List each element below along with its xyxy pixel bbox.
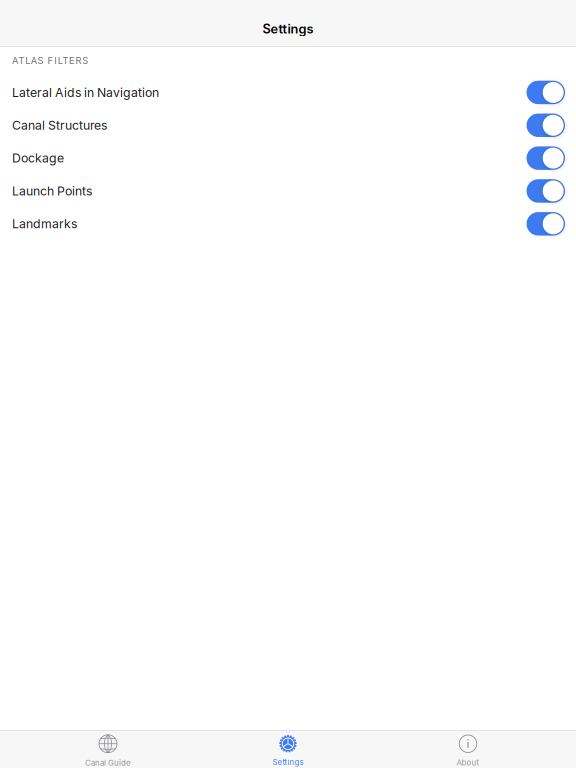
button[interactable]: Landmarks [0, 207, 576, 240]
staticText: Settings [272, 757, 303, 767]
button[interactable]: Lateral Aids in Navigation [0, 76, 576, 109]
staticText: About [456, 758, 479, 767]
staticText: Landmarks [12, 216, 77, 231]
button[interactable]: Dockage [0, 142, 576, 175]
staticText: Canal Structures [12, 118, 107, 133]
button[interactable]: About [378, 730, 558, 768]
staticText: Settings [262, 21, 313, 36]
staticText: Dockage [12, 151, 64, 165]
button[interactable]: Canal Structures [0, 109, 576, 142]
staticText: ATLAS FILTERS [12, 55, 88, 66]
button[interactable]: Settings [198, 730, 378, 768]
button[interactable]: Canal Guide [18, 730, 198, 768]
staticText: Lateral Aids in Navigation [12, 85, 159, 100]
staticText: Canal Guide [85, 758, 131, 768]
staticText: Launch Points [12, 184, 92, 198]
button[interactable]: Launch Points [0, 174, 576, 207]
